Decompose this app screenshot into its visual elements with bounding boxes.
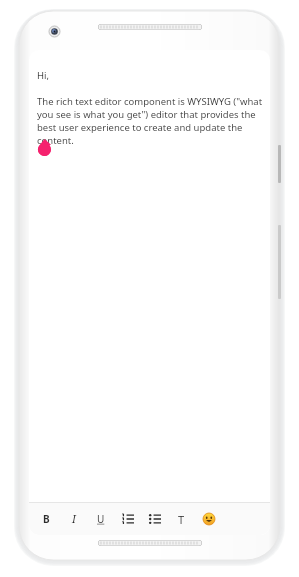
staticText: I xyxy=(72,512,76,526)
button[interactable]: Emoji xyxy=(195,503,222,535)
button[interactable]: Bulleted list xyxy=(141,503,168,535)
button[interactable]: Italic xyxy=(60,503,87,535)
staticText: Hi, xyxy=(37,69,50,82)
button[interactable]: Underline xyxy=(87,503,114,535)
staticText: B xyxy=(43,512,50,526)
other: Text selection handle xyxy=(38,139,51,156)
button[interactable]: Bold xyxy=(33,503,60,535)
staticText: T xyxy=(178,512,185,527)
staticText: U xyxy=(97,512,105,526)
staticText: The rich text editor component is WYSIWY… xyxy=(37,95,264,147)
button[interactable]: Hi, xyxy=(29,50,270,502)
button[interactable]: Numbered list xyxy=(114,503,141,535)
button[interactable]: Text format xyxy=(168,503,195,535)
